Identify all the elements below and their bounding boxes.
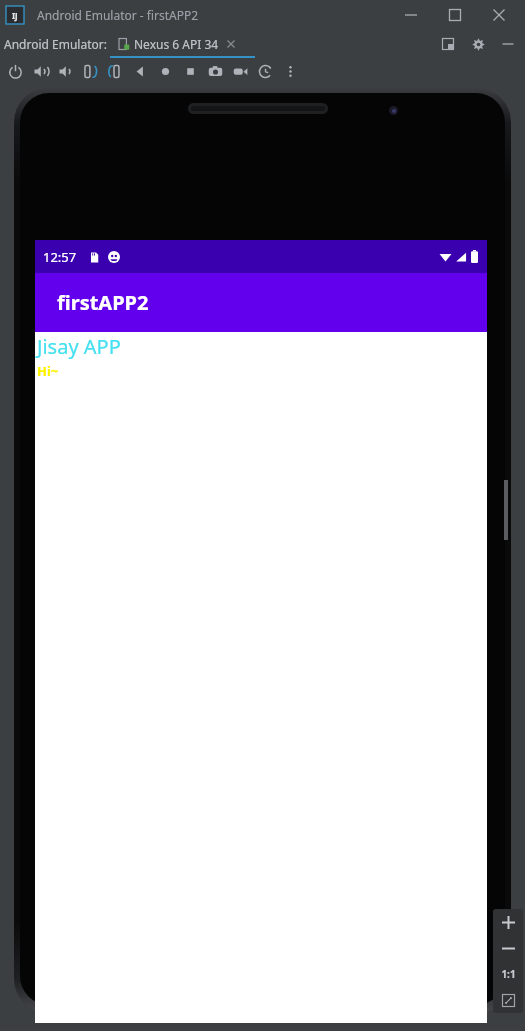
button[interactable]: Hide panel bbox=[437, 33, 459, 55]
button[interactable]: Zoom in bbox=[493, 909, 523, 935]
button[interactable]: back bbox=[128, 59, 153, 84]
button[interactable]: Fit to screen bbox=[493, 987, 523, 1013]
button[interactable]: recents bbox=[178, 59, 203, 84]
button[interactable]: rotleft bbox=[78, 59, 103, 84]
button[interactable]: Actual size bbox=[493, 961, 523, 987]
button[interactable]: screenshot bbox=[203, 59, 228, 84]
button[interactable]: volup bbox=[28, 59, 53, 84]
button[interactable]: rotright bbox=[103, 59, 128, 84]
button[interactable]: Maximize bbox=[433, 1, 477, 29]
button[interactable]: Nexus 6 API 34 bbox=[118, 36, 237, 52]
staticText: IJ bbox=[12, 10, 18, 21]
button[interactable]: Settings bbox=[467, 33, 489, 55]
button[interactable]: record bbox=[228, 59, 253, 84]
button[interactable]: Minimize bbox=[389, 1, 433, 29]
staticText: Hi~ bbox=[37, 362, 59, 380]
staticText: 12:57 bbox=[43, 248, 77, 266]
staticText: Android Emulator - firstAPP2 bbox=[37, 7, 199, 23]
button[interactable]: history bbox=[253, 59, 278, 84]
staticText: Nexus 6 API 34 bbox=[134, 36, 219, 52]
staticText: firstAPP2 bbox=[57, 289, 149, 316]
staticText: Android Emulator: bbox=[4, 36, 107, 52]
button[interactable]: firstAPP2 bbox=[35, 273, 487, 332]
button[interactable]: home bbox=[153, 59, 178, 84]
button[interactable]: more bbox=[278, 59, 303, 84]
button[interactable]: Minimize panel bbox=[497, 33, 519, 55]
button[interactable]: power bbox=[3, 59, 28, 84]
staticText: Jisay APP bbox=[37, 333, 121, 360]
staticText: 1:1 bbox=[501, 967, 516, 981]
button[interactable]: Close tab bbox=[225, 38, 237, 50]
button[interactable]: Zoom out bbox=[493, 935, 523, 961]
button[interactable]: voldown bbox=[53, 59, 78, 84]
button[interactable]: Close bbox=[477, 1, 521, 29]
